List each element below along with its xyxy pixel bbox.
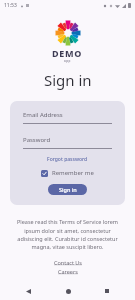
staticText: Careers bbox=[58, 268, 78, 275]
staticText: Sign in bbox=[44, 70, 92, 90]
button[interactable]: Sign in bbox=[48, 184, 87, 195]
staticText: Email Address bbox=[23, 111, 63, 119]
button[interactable]: Email Address bbox=[23, 111, 112, 124]
staticText: Password bbox=[23, 136, 51, 144]
staticText: DEMO bbox=[52, 47, 83, 59]
staticText: Please read this Terms of Service lorem … bbox=[14, 218, 121, 250]
staticText: 11:53 bbox=[4, 2, 17, 9]
button[interactable]: Recent apps bbox=[96, 282, 118, 300]
staticText: app bbox=[64, 59, 71, 63]
staticText: Sign in bbox=[59, 186, 77, 193]
button[interactable]: Contact Us bbox=[53, 258, 83, 267]
staticText: Remember me bbox=[52, 169, 94, 177]
button[interactable]: Remember me bbox=[23, 169, 112, 177]
button[interactable]: Careers bbox=[57, 267, 79, 276]
button[interactable]: Home bbox=[57, 282, 79, 300]
button[interactable]: Back bbox=[17, 282, 39, 300]
button[interactable]: Password bbox=[23, 136, 112, 149]
staticText: Contact Us bbox=[54, 259, 82, 266]
staticText: Forgot password bbox=[47, 156, 88, 163]
button[interactable]: Forgot password bbox=[23, 156, 112, 163]
